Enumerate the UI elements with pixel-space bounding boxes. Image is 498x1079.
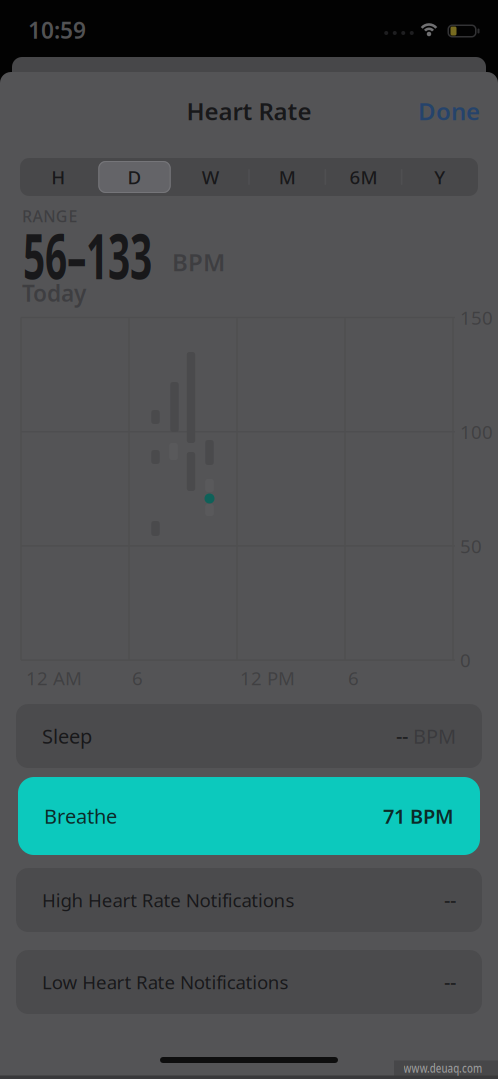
- staticText: Breathe: [44, 803, 117, 829]
- button[interactable]: High Heart Rate Notifications: [16, 868, 482, 932]
- staticText: Heart Rate: [186, 95, 311, 127]
- staticText: 50: [460, 533, 482, 558]
- staticText: 150: [460, 305, 493, 330]
- staticText: D: [127, 165, 141, 189]
- staticText: 12 AM: [26, 666, 82, 690]
- button[interactable]: D: [96, 158, 173, 196]
- staticText: Y: [434, 165, 445, 189]
- staticText: --: [396, 723, 408, 749]
- button[interactable]: H: [20, 158, 96, 196]
- staticText: High Heart Rate Notifications: [42, 888, 294, 912]
- staticText: www.deuaq.com: [389, 1059, 497, 1077]
- staticText: 56–133: [23, 213, 231, 297]
- staticText: Today: [22, 278, 86, 308]
- staticText: 10:59: [28, 15, 86, 45]
- button[interactable]: Breathe: [18, 777, 480, 855]
- staticText: --: [444, 969, 456, 995]
- button[interactable]: Done: [418, 95, 480, 127]
- staticText: 6M: [349, 165, 377, 189]
- staticText: 12 PM: [240, 666, 295, 690]
- staticText: Sleep: [42, 723, 92, 749]
- button[interactable]: 6M: [325, 158, 402, 196]
- staticText: 100: [460, 419, 493, 444]
- button[interactable]: Low Heart Rate Notifications: [16, 950, 482, 1014]
- staticText: 6: [348, 666, 359, 690]
- staticText: H: [51, 165, 65, 189]
- staticText: RANGE: [22, 205, 77, 227]
- staticText: 71 BPM: [383, 803, 454, 829]
- staticText: 0: [460, 648, 471, 672]
- button[interactable]: Y: [402, 158, 478, 196]
- staticText: BPM: [413, 723, 456, 749]
- staticText: 6: [132, 666, 143, 690]
- button[interactable]: W: [173, 158, 249, 196]
- staticText: W: [202, 165, 220, 189]
- staticText: M: [279, 165, 296, 189]
- staticText: Low Heart Rate Notifications: [42, 970, 289, 994]
- staticText: --: [444, 887, 456, 913]
- staticText: Done: [418, 95, 480, 127]
- button[interactable]: Sleep: [16, 704, 482, 768]
- button[interactable]: M: [249, 158, 325, 196]
- staticText: BPM: [172, 246, 225, 278]
